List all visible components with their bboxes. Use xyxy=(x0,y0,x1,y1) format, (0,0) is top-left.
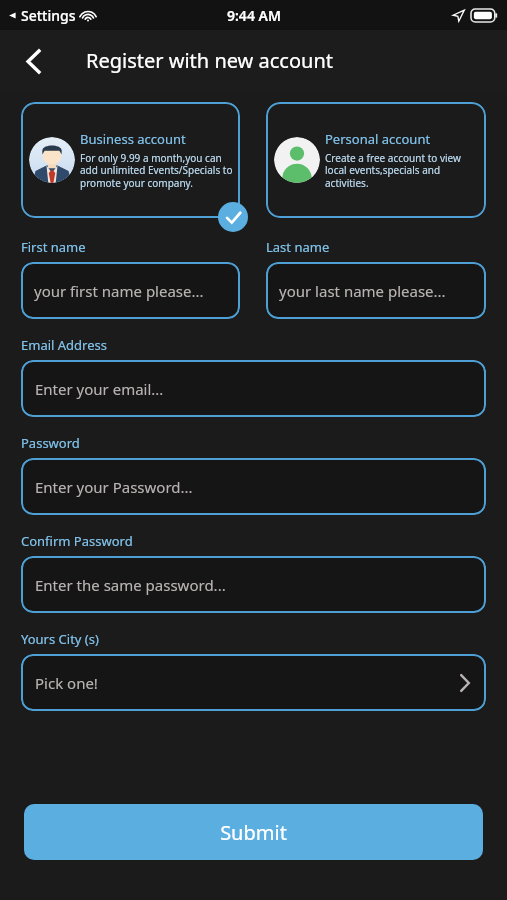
staticText: Enter your email... xyxy=(35,379,164,399)
staticText: Email Address xyxy=(21,336,107,354)
staticText: Enter the same password... xyxy=(35,575,226,595)
button[interactable]: Enter your email... xyxy=(21,360,486,417)
button[interactable]: Business account xyxy=(21,102,240,218)
staticText: Enter your Password... xyxy=(35,477,193,497)
staticText: First name xyxy=(21,238,86,256)
button[interactable]: Submit xyxy=(24,804,483,860)
staticText: Confirm Password xyxy=(21,532,133,550)
staticText: Password xyxy=(21,434,80,452)
staticText: Register with new account xyxy=(86,47,333,74)
staticText: Pick one! xyxy=(35,673,460,693)
staticText: Yours City (s) xyxy=(21,630,99,648)
staticText: Last name xyxy=(266,238,330,256)
button[interactable]: Back xyxy=(12,40,54,82)
button[interactable]: your first name please... xyxy=(21,262,240,319)
staticText: your last name please... xyxy=(279,281,446,301)
staticText: 9:44 AM xyxy=(227,6,281,25)
button[interactable]: Pick one! xyxy=(21,654,486,711)
button[interactable]: Personal account xyxy=(266,102,486,218)
staticText: Settings xyxy=(21,6,76,25)
staticText: Create a free account to view local even… xyxy=(325,151,480,190)
button[interactable]: Enter your Password... xyxy=(21,458,486,515)
staticText: your first name please... xyxy=(34,281,204,301)
staticText: Business account xyxy=(80,130,186,148)
button[interactable]: your last name please... xyxy=(266,262,486,319)
button[interactable]: Enter the same password... xyxy=(21,556,486,613)
staticText: Submit xyxy=(220,819,287,846)
staticText: For only 9.99 a month,you can add unlimi… xyxy=(80,151,234,190)
staticText: Personal account xyxy=(325,130,431,148)
